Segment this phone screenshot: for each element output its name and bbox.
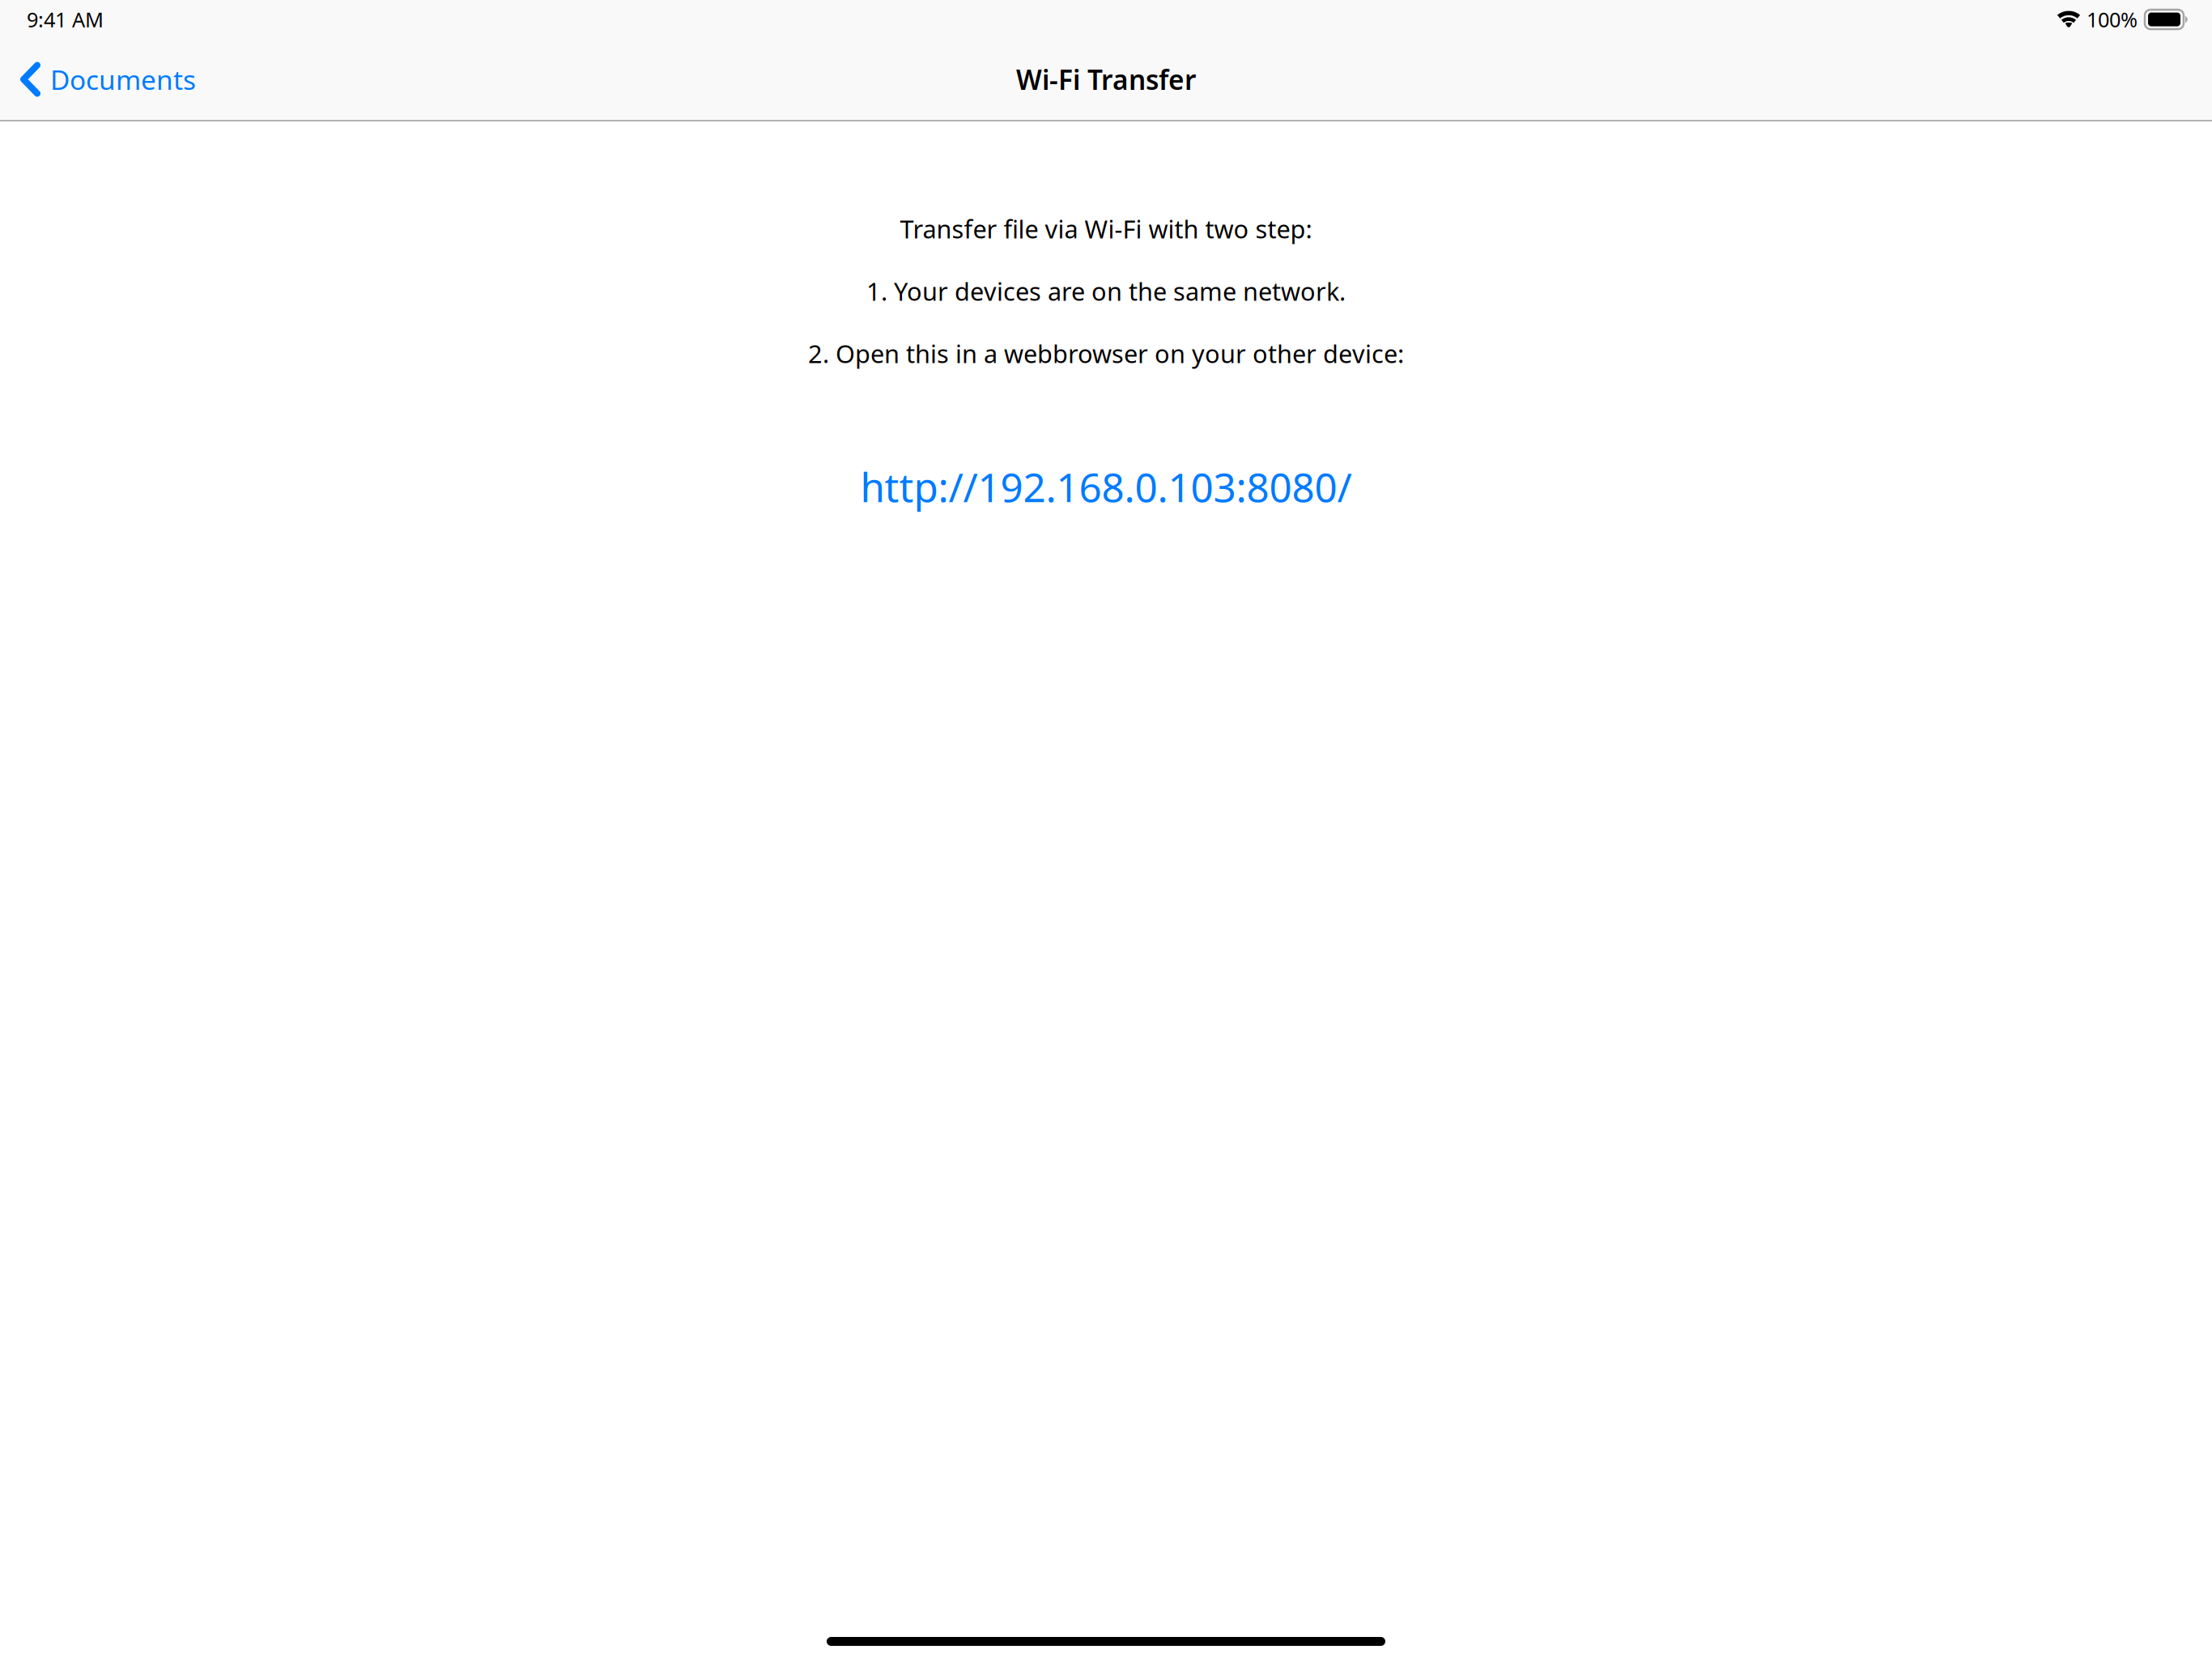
staticText: 100% <box>2087 6 2138 33</box>
staticText: 1. Your devices are on the same network. <box>866 275 1346 307</box>
button[interactable]: Documents <box>0 39 2212 120</box>
staticText: 2. Open this in a webbrowser on your oth… <box>808 337 1404 370</box>
staticText: http://192.168.0.103:8080/ <box>860 460 1352 513</box>
button[interactable]: http://192.168.0.103:8080/ <box>860 461 1352 512</box>
staticText: Documents <box>50 61 196 97</box>
staticText: 9:41 AM <box>27 6 104 33</box>
staticText: Wi-Fi Transfer <box>1016 61 1196 97</box>
staticText: Transfer file via Wi-Fi with two step: <box>900 212 1312 245</box>
